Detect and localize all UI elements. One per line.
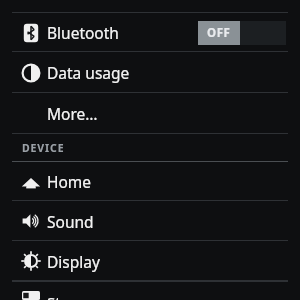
other: Data usage [21, 63, 41, 83]
button[interactable]: Home [0, 162, 300, 201]
other: Sound [21, 211, 41, 231]
other: Home [21, 172, 41, 192]
staticText: More… [47, 103, 98, 124]
staticText: Display [47, 251, 100, 272]
button[interactable]: Bluetooth [0, 13, 300, 52]
staticText: Data usage [47, 62, 130, 83]
staticText: OFF [207, 25, 231, 41]
other: Bluetooth [21, 23, 41, 43]
other: Storage [22, 291, 40, 300]
button[interactable]: Data usage [0, 52, 300, 93]
button[interactable]: Display [0, 241, 300, 281]
staticText: DEVICE [22, 141, 65, 155]
staticText: Sound [47, 211, 94, 232]
button[interactable]: Sound [0, 201, 300, 241]
button[interactable]: Storage [0, 281, 300, 300]
staticText: Home [47, 171, 92, 192]
button[interactable]: OFF [198, 21, 286, 45]
other: Display [21, 251, 41, 271]
button[interactable]: More… [0, 93, 300, 134]
staticText: Bluetooth [47, 22, 119, 43]
staticText: St [47, 292, 61, 300]
